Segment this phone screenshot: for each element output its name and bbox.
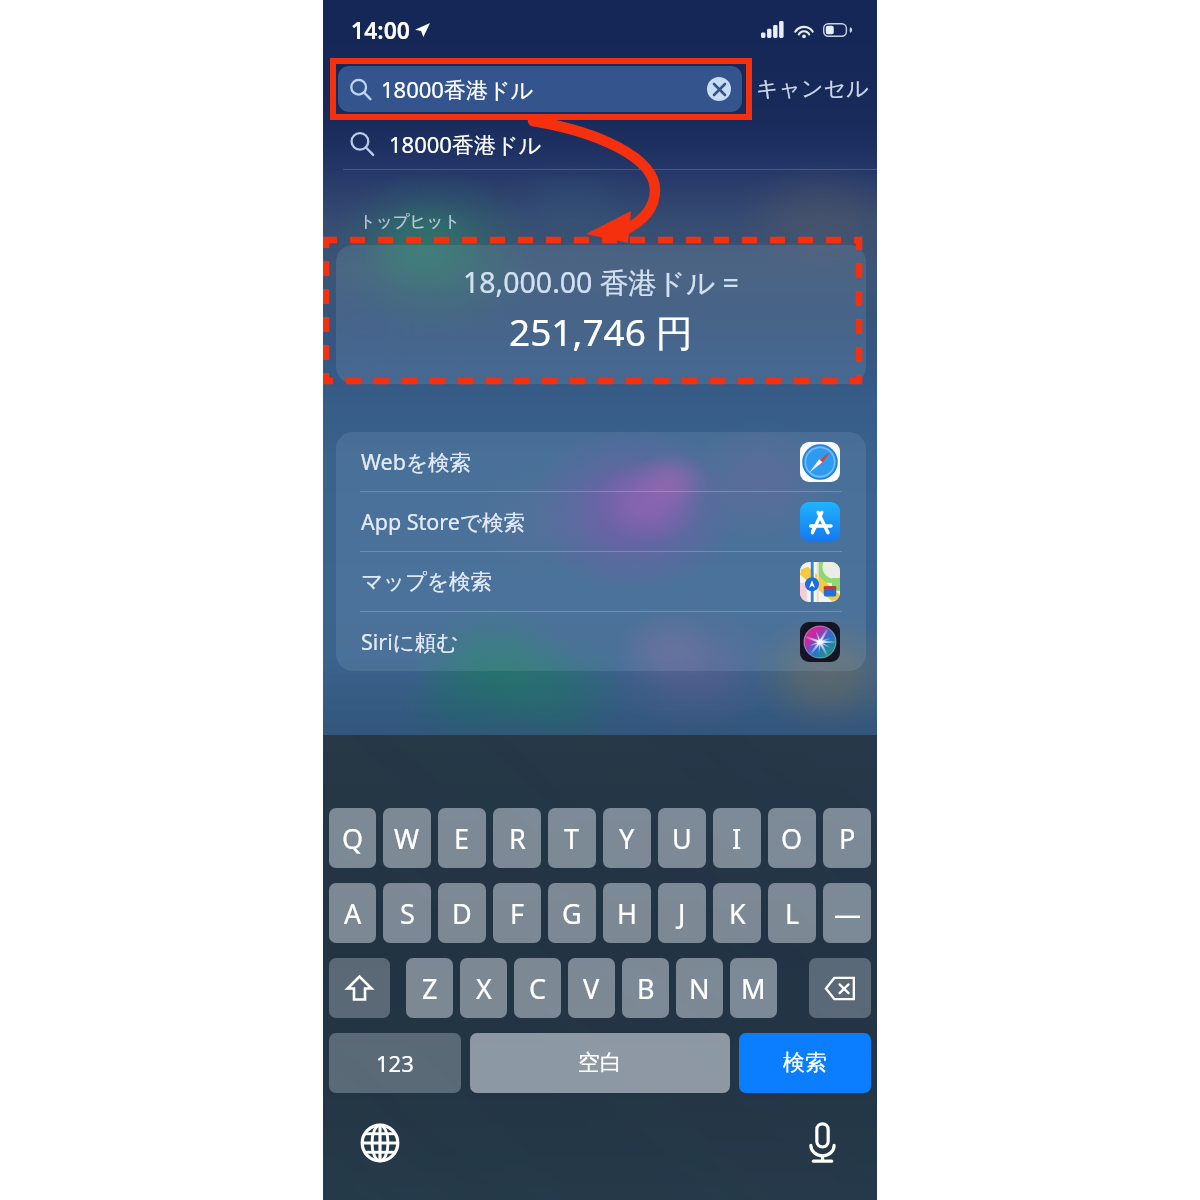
staticText: M bbox=[741, 970, 766, 1007]
button[interactable]: Backspace bbox=[809, 958, 871, 1018]
staticText: W bbox=[394, 820, 420, 857]
button[interactable]: App Storeで検索 bbox=[336, 492, 866, 551]
staticText: 検索 bbox=[783, 1049, 827, 1077]
staticText: Q bbox=[342, 820, 364, 857]
button[interactable]: P bbox=[823, 808, 871, 868]
button[interactable]: R bbox=[493, 808, 541, 868]
button[interactable]: G bbox=[548, 883, 596, 943]
button[interactable]: L bbox=[768, 883, 816, 943]
button[interactable]: M bbox=[730, 958, 777, 1018]
button[interactable]: 18000香港ドル bbox=[338, 66, 742, 112]
staticText: I bbox=[732, 820, 742, 857]
button[interactable]: キャンセル bbox=[756, 75, 869, 103]
button[interactable]: Change keyboard bbox=[358, 1121, 402, 1165]
staticText: Z bbox=[422, 970, 438, 1007]
button[interactable]: H bbox=[603, 883, 651, 943]
button[interactable]: C bbox=[514, 958, 561, 1018]
button[interactable]: 検索 bbox=[739, 1033, 871, 1093]
button[interactable]: Y bbox=[603, 808, 651, 868]
button[interactable]: — bbox=[823, 883, 871, 943]
button[interactable]: W bbox=[383, 808, 431, 868]
staticText: R bbox=[509, 820, 526, 857]
button[interactable]: Webを検索 bbox=[336, 432, 866, 491]
button[interactable]: 18000香港ドル bbox=[323, 112, 877, 169]
button[interactable]: D bbox=[438, 883, 486, 943]
staticText: G bbox=[562, 895, 582, 932]
button[interactable]: 18,000.00 香港ドル = bbox=[336, 245, 866, 384]
staticText: U bbox=[672, 820, 692, 857]
staticText: 18,000.00 香港ドル = bbox=[463, 263, 739, 302]
staticText: C bbox=[529, 970, 547, 1007]
button[interactable]: Dictate bbox=[800, 1121, 844, 1165]
button[interactable]: J bbox=[658, 883, 706, 943]
staticText: 251,746 円 bbox=[509, 306, 693, 357]
staticText: E bbox=[454, 820, 470, 857]
staticText: App Storeで検索 bbox=[361, 507, 525, 536]
staticText: Webを検索 bbox=[361, 447, 471, 476]
button[interactable]: Q bbox=[329, 808, 376, 868]
button[interactable]: Clear text bbox=[707, 77, 731, 101]
staticText: 123 bbox=[376, 1048, 414, 1078]
staticText: B bbox=[637, 970, 655, 1007]
button[interactable]: I bbox=[713, 808, 761, 868]
button[interactable]: S bbox=[383, 883, 431, 943]
button[interactable]: U bbox=[658, 808, 706, 868]
staticText: D bbox=[452, 895, 472, 932]
staticText: トップヒット bbox=[359, 211, 461, 232]
button[interactable]: マップを検索 bbox=[336, 552, 866, 611]
staticText: キャンセル bbox=[756, 75, 869, 103]
staticText: K bbox=[729, 895, 746, 932]
staticText: O bbox=[781, 820, 803, 857]
staticText: L bbox=[785, 895, 800, 932]
staticText: N bbox=[689, 970, 710, 1007]
button[interactable]: O bbox=[768, 808, 816, 868]
staticText: S bbox=[400, 895, 415, 932]
button[interactable]: Z bbox=[406, 958, 453, 1018]
staticText: A bbox=[344, 895, 362, 932]
staticText: V bbox=[583, 970, 600, 1007]
button[interactable]: E bbox=[438, 808, 486, 868]
staticText: 14:00 bbox=[351, 14, 410, 45]
staticText: X bbox=[476, 970, 492, 1007]
staticText: Y bbox=[619, 820, 635, 857]
button[interactable]: B bbox=[622, 958, 669, 1018]
staticText: 空白 bbox=[578, 1049, 622, 1077]
button[interactable]: A bbox=[329, 883, 376, 943]
button[interactable]: 123 bbox=[329, 1033, 461, 1093]
button[interactable]: 空白 bbox=[470, 1033, 730, 1093]
button[interactable]: X bbox=[460, 958, 507, 1018]
staticText: 18000香港ドル bbox=[381, 74, 533, 104]
button[interactable]: F bbox=[493, 883, 541, 943]
button[interactable]: Siriに頼む bbox=[336, 612, 866, 671]
staticText: F bbox=[510, 895, 525, 932]
button[interactable]: N bbox=[676, 958, 723, 1018]
staticText: J bbox=[678, 895, 686, 932]
staticText: T bbox=[564, 820, 580, 857]
button[interactable]: V bbox=[568, 958, 615, 1018]
staticText: マップを検索 bbox=[361, 568, 493, 595]
staticText: 18000香港ドル bbox=[389, 129, 541, 159]
staticText: H bbox=[617, 895, 638, 932]
button[interactable]: T bbox=[548, 808, 596, 868]
button[interactable]: K bbox=[713, 883, 761, 943]
staticText: P bbox=[839, 820, 856, 857]
button[interactable]: Shift bbox=[329, 958, 390, 1018]
staticText: — bbox=[834, 895, 861, 932]
staticText: Siriに頼む bbox=[361, 627, 459, 656]
